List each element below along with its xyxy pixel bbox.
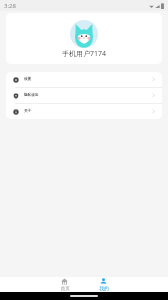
- staticText: 隐私设定: [24, 93, 39, 98]
- staticText: 首页: [60, 286, 70, 292]
- button[interactable]: 手机用户7174: [6, 13, 162, 64]
- button[interactable]: 设置: [6, 72, 162, 87]
- button[interactable]: 我的: [94, 277, 113, 292]
- staticText: 关于: [24, 109, 32, 114]
- button[interactable]: 隐私设定: [6, 88, 162, 103]
- staticText: 我的: [99, 286, 109, 292]
- staticText: 设置: [24, 77, 32, 82]
- staticText: 3:28: [4, 2, 16, 10]
- staticText: 手机用户7174: [62, 49, 107, 59]
- button[interactable]: 关于: [6, 104, 162, 119]
- button[interactable]: 首页: [55, 277, 74, 292]
